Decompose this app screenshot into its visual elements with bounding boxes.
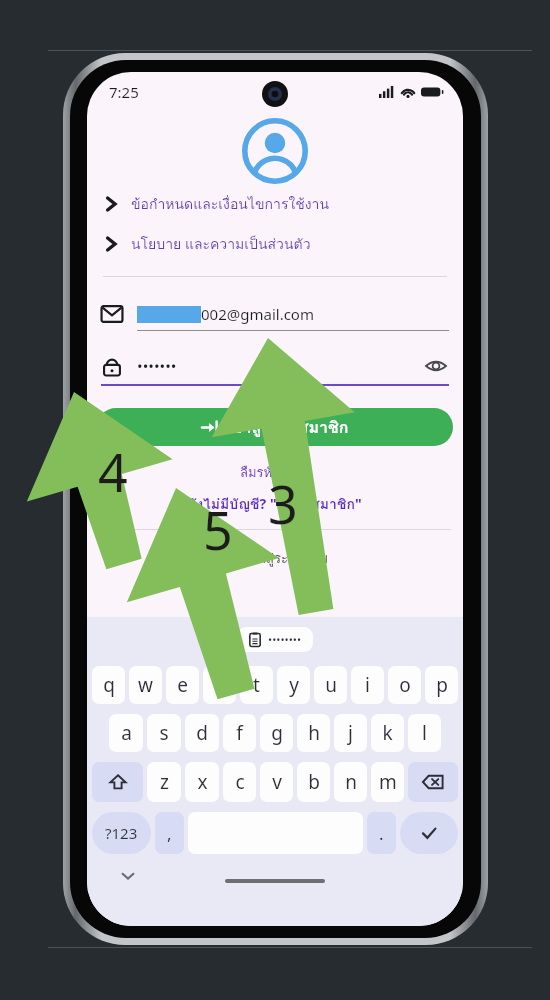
button[interactable]: k bbox=[371, 714, 404, 752]
button[interactable]: u bbox=[314, 666, 347, 704]
staticText: u bbox=[325, 672, 337, 698]
button[interactable]: l bbox=[408, 714, 441, 752]
button[interactable]: ••••••• bbox=[87, 353, 463, 386]
staticText: g bbox=[271, 720, 283, 746]
staticText: r bbox=[216, 672, 224, 698]
button[interactable]: นโยบาย และความเป็นส่วนตัว bbox=[87, 230, 463, 258]
button[interactable]: g bbox=[260, 714, 293, 752]
staticText: 002@gmail.com bbox=[201, 304, 314, 324]
staticText: j bbox=[348, 720, 353, 746]
staticText: •••••••• bbox=[268, 632, 302, 647]
button[interactable]: i bbox=[351, 666, 384, 704]
staticText: n bbox=[345, 769, 357, 795]
button[interactable]: r bbox=[203, 666, 236, 704]
button[interactable]: c bbox=[223, 762, 256, 802]
staticText: ••••••• bbox=[137, 356, 177, 376]
button[interactable]: j bbox=[334, 714, 367, 752]
staticText: s bbox=[159, 720, 169, 746]
staticText: 4 bbox=[98, 436, 128, 507]
button[interactable]: 002@gmail.com bbox=[87, 303, 463, 331]
button[interactable]: b bbox=[297, 762, 330, 802]
staticText: , bbox=[167, 822, 172, 845]
staticText: z bbox=[160, 769, 169, 795]
staticText: x bbox=[197, 769, 208, 795]
staticText: w bbox=[138, 672, 153, 698]
staticText: b bbox=[308, 769, 320, 795]
staticText: ข้อกำหนดและเงื่อนไขการใช้งาน bbox=[131, 193, 330, 215]
button[interactable]: x bbox=[185, 762, 219, 802]
staticText: c bbox=[235, 769, 245, 795]
button[interactable]: Hide keyboard bbox=[117, 865, 139, 887]
staticText: นโยบาย และความเป็นส่วนตัว bbox=[131, 233, 311, 255]
button[interactable]: , bbox=[155, 812, 184, 854]
button[interactable]: ?123 bbox=[92, 812, 151, 854]
button[interactable]: •••••••• bbox=[237, 627, 313, 652]
staticText: e bbox=[177, 672, 188, 698]
button[interactable]: s bbox=[147, 714, 181, 752]
staticText: a bbox=[121, 720, 132, 746]
staticText: y bbox=[289, 672, 299, 698]
staticText: o bbox=[399, 672, 411, 698]
staticText: m bbox=[379, 769, 397, 795]
button[interactable]: n bbox=[334, 762, 367, 802]
staticText: ?123 bbox=[105, 823, 138, 843]
button[interactable]: . bbox=[367, 812, 396, 854]
button[interactable]: Show password bbox=[423, 353, 449, 379]
staticText: q bbox=[103, 672, 115, 698]
staticText: t bbox=[253, 672, 260, 698]
staticText: f bbox=[236, 720, 243, 746]
staticText: . bbox=[379, 822, 384, 845]
staticText: หรือเข้าสู่ระบบด้วย bbox=[222, 548, 328, 569]
button[interactable]: d bbox=[185, 714, 219, 752]
staticText: p bbox=[436, 672, 448, 698]
button[interactable]: f bbox=[223, 714, 256, 752]
button[interactable]: ข้อกำหนดและเงื่อนไขการใช้งาน bbox=[87, 190, 463, 218]
button[interactable]: ยังไม่มีบัญชี? "สมัครสมาชิก" bbox=[188, 493, 362, 515]
button[interactable]: z bbox=[147, 762, 181, 802]
button[interactable]: w bbox=[129, 666, 162, 704]
button[interactable]: p bbox=[425, 666, 458, 704]
staticText: 7:25 bbox=[109, 82, 139, 102]
button[interactable]: e bbox=[166, 666, 199, 704]
button[interactable]: o bbox=[388, 666, 421, 704]
button[interactable]: v bbox=[260, 762, 293, 802]
staticText: i bbox=[365, 672, 370, 698]
button[interactable]: t bbox=[240, 666, 273, 704]
button[interactable]: y bbox=[277, 666, 310, 704]
button[interactable]: q bbox=[92, 666, 125, 704]
staticText: l bbox=[422, 720, 427, 746]
staticText: d bbox=[196, 720, 208, 746]
button[interactable]: a bbox=[109, 714, 143, 752]
staticText: 3 bbox=[268, 468, 298, 539]
button[interactable]: เข้าสู่ระบบสมาชิก bbox=[97, 408, 453, 446]
button[interactable]: ลืมรหัสผ่าน? bbox=[240, 462, 310, 483]
button[interactable]: Shift bbox=[92, 762, 143, 802]
staticText: 5 bbox=[203, 494, 233, 565]
button[interactable]: h bbox=[297, 714, 330, 752]
button[interactable]: m bbox=[371, 762, 404, 802]
staticText: v bbox=[272, 769, 282, 795]
button[interactable]: Backspace bbox=[408, 762, 458, 802]
staticText: เข้าสู่ระบบสมาชิก bbox=[226, 415, 349, 440]
staticText: h bbox=[308, 720, 320, 746]
staticText: k bbox=[382, 720, 393, 746]
button[interactable]: Enter bbox=[400, 812, 458, 854]
